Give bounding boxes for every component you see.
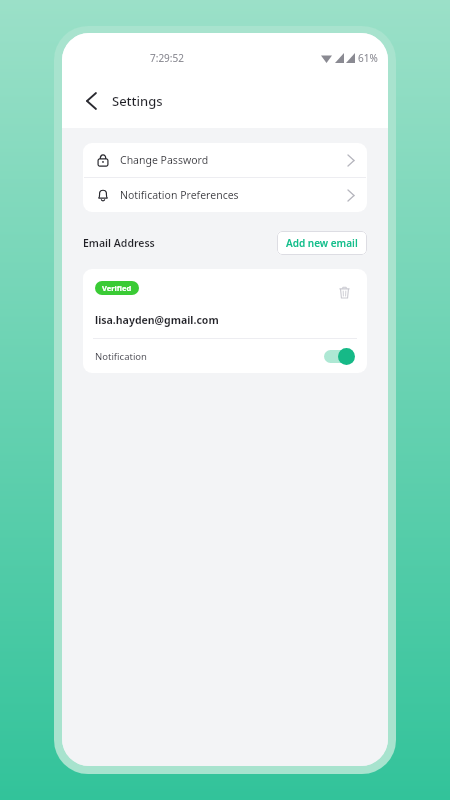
button[interactable]: Delete email [333,281,355,303]
staticText: Verified [102,283,132,293]
staticText: Notification [95,350,147,363]
button[interactable]: Notification toggle [323,347,355,365]
button[interactable]: Change Password [83,143,367,177]
staticText: Notification Preferences [120,188,239,202]
staticText: Change Password [120,153,209,167]
staticText: lisa.hayden@gmail.com [95,313,219,327]
staticText: Settings [112,92,163,110]
button[interactable]: Notification Preferences [83,178,367,212]
button[interactable]: Notification [83,339,367,373]
staticText: 61% [358,51,378,65]
button[interactable]: Back [76,86,106,116]
staticText: Add new email [286,236,358,250]
staticText: Email Address [83,236,155,250]
staticText: 7:29:52 [150,51,184,65]
button[interactable]: Add new email [277,231,367,255]
